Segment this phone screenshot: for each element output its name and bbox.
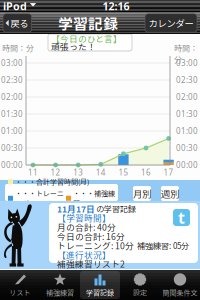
staticText: 頑張った！ [51, 40, 96, 53]
staticText: 13 [73, 167, 83, 178]
staticText: の学習記録 [96, 203, 136, 214]
staticText: 02:30 [176, 75, 198, 85]
staticText: 01:30 [1, 109, 23, 119]
button[interactable]: 週別 [161, 186, 179, 201]
staticText: 03:00 [176, 58, 198, 68]
staticText: 01:30 [176, 109, 198, 119]
staticText: 16 [141, 167, 151, 178]
staticText: 02:30 [1, 75, 23, 85]
staticText: 00:30 [176, 143, 198, 153]
staticText [27, 1, 29, 11]
staticText: 学習記録 [58, 12, 118, 34]
button[interactable]: 月別 [133, 186, 151, 201]
staticText: 学習記録 [86, 287, 114, 297]
staticText: 設定 [133, 287, 147, 297]
staticText: ・・・補強練習 [73, 188, 115, 208]
staticText: トレーニング: 10分 [57, 239, 134, 252]
staticText: 17 [164, 167, 174, 178]
staticText: 時間：分 [174, 42, 198, 65]
button[interactable]: 学習記録 [80, 271, 120, 299]
staticText: 00:00 [176, 160, 198, 170]
staticText: 【今日のひと言】 [51, 32, 122, 45]
staticText: 【進行状況】 [57, 248, 111, 261]
staticText: 12 [51, 167, 61, 178]
staticText: 【学習時間】 [57, 211, 111, 224]
staticText: 11 [28, 167, 38, 178]
staticText: 01:00 [176, 126, 198, 136]
staticText: 月の合計: 40分 [57, 221, 116, 233]
staticText: 00:30 [1, 143, 23, 153]
staticText: 03:00 [1, 58, 23, 68]
button[interactable]: 補強練習 [40, 271, 80, 299]
button[interactable]: リスト [0, 271, 40, 299]
staticText: ・・・合計学習時間(月) [15, 177, 89, 187]
staticText: 簡閲条件文 [162, 287, 197, 297]
staticText: 月別 [133, 187, 151, 200]
staticText: t [178, 207, 185, 228]
staticText: 補強練習 [46, 287, 74, 297]
staticText: リスト [9, 287, 30, 297]
staticText: ・・・トレーニング [15, 188, 64, 208]
staticText: 15 [118, 167, 128, 178]
staticText: 補強練習: 05分 [137, 240, 189, 251]
staticText: 時間：分 [2, 42, 34, 54]
button[interactable]: 戻る [3, 14, 32, 32]
button[interactable]: カレンダー [145, 14, 197, 32]
staticText: カレンダー [148, 16, 193, 30]
staticText: 02:00 [1, 92, 23, 102]
staticText: 今日の合計: 16分 [57, 230, 125, 242]
button[interactable]: 簡閲条件文 [160, 271, 200, 299]
staticText: 14 [96, 167, 106, 178]
staticText: iPod [3, 0, 27, 13]
staticText: 02:00 [176, 92, 198, 102]
staticText: 00:00 [1, 160, 23, 170]
staticText: 01:00 [1, 126, 23, 136]
staticText [195, 1, 197, 11]
staticText: 12:16 [102, 0, 129, 13]
staticText: 11月17日 [57, 202, 95, 215]
staticText: 週別 [161, 187, 179, 200]
button[interactable]: Share on Twitter [172, 208, 191, 227]
staticText: 戻る [10, 16, 28, 30]
button[interactable]: 設定 [120, 271, 160, 299]
staticText: 補強練習リスト2 [57, 257, 125, 270]
